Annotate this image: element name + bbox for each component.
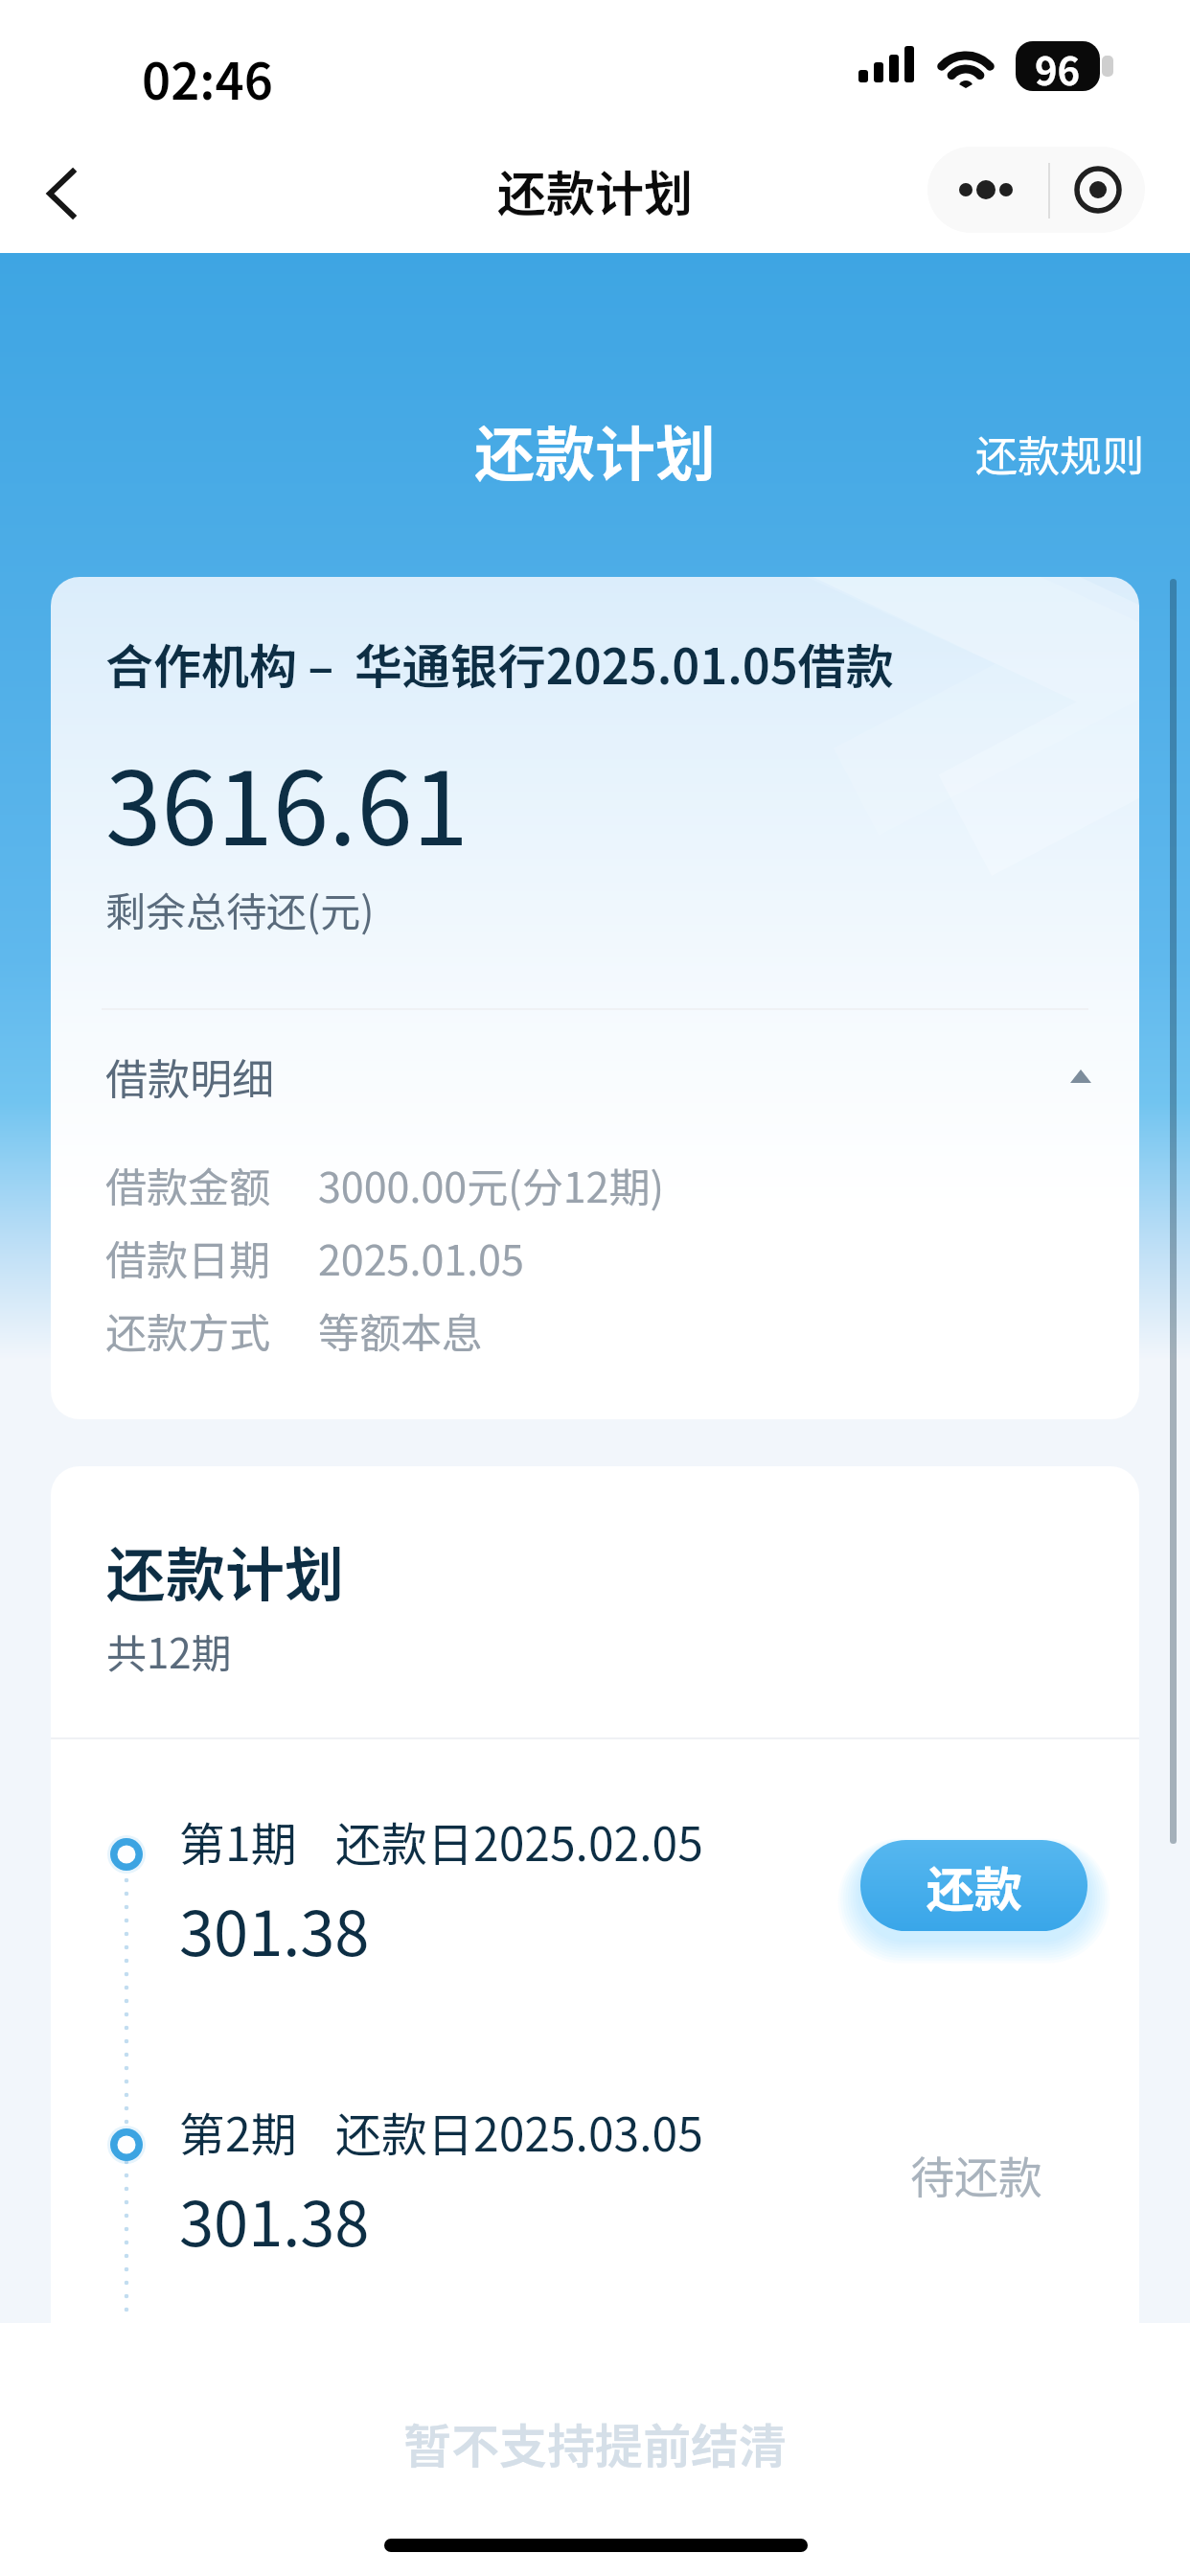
- staticText: 还款: [927, 1851, 1022, 1920]
- staticText: 301.38: [179, 2174, 370, 2265]
- staticText: 合作机构 – 华通银行2025.01.05借款: [105, 629, 894, 698]
- staticText: 还款方式: [105, 1300, 318, 1360]
- staticText: 等额本息: [318, 1300, 483, 1360]
- staticText: 第2期: [179, 2098, 297, 2165]
- staticText: 3000.00元(分12期): [318, 1155, 664, 1214]
- staticText: 待还款: [910, 2143, 1042, 2207]
- staticText: 3616.61: [105, 728, 469, 874]
- staticText: 借款日期: [105, 1228, 318, 1287]
- staticText: 2025.01.05: [318, 1228, 524, 1287]
- button[interactable]: 还款: [860, 1840, 1087, 1931]
- staticText: 还款日2025.02.05: [335, 1807, 703, 1874]
- button[interactable]: Back: [15, 148, 107, 240]
- staticText: 借款金额: [105, 1155, 318, 1214]
- staticText: 还款计划: [0, 155, 1190, 226]
- button[interactable]: 还款规则: [975, 423, 1144, 484]
- staticText: 借款明细: [105, 1046, 274, 1107]
- staticText: 301.38: [179, 1884, 370, 1974]
- staticText: 共12期: [106, 1621, 232, 1680]
- staticText: 剩余总待还(元): [105, 880, 375, 938]
- staticText: 还款日2025.03.05: [335, 2098, 703, 2165]
- staticText: 暂不支持提前结清: [0, 2408, 1190, 2477]
- staticText: 02:46: [142, 42, 273, 114]
- staticText: 还款计划: [106, 1528, 345, 1614]
- button[interactable]: More: [927, 147, 1049, 233]
- button[interactable]: 借款明细: [51, 1045, 1139, 1108]
- staticText: 还款计划: [0, 406, 1190, 494]
- button[interactable]: Close mini program: [1050, 147, 1145, 233]
- staticText: 第1期: [179, 1807, 297, 1874]
- staticText: 96: [1035, 41, 1081, 91]
